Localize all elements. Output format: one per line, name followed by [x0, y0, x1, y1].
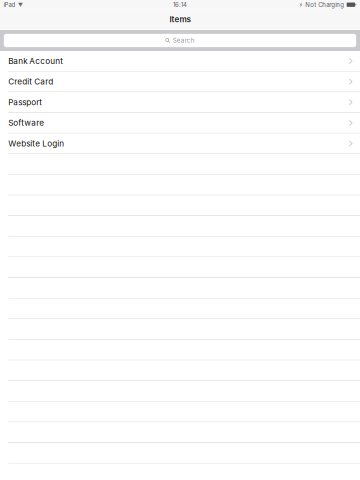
staticText: Software — [8, 118, 44, 128]
button[interactable]: Passport — [0, 92, 360, 113]
staticText: iPad — [4, 1, 16, 8]
staticText: Search — [173, 37, 195, 44]
button[interactable]: Software — [0, 113, 360, 133]
staticText: Not Charging — [305, 1, 344, 8]
staticText: 16:14 — [173, 1, 187, 8]
button[interactable]: Website Login — [0, 133, 360, 154]
staticText: Website Login — [8, 139, 64, 148]
staticText: Bank Account — [8, 56, 63, 66]
staticText: Credit Card — [8, 77, 53, 86]
staticText: Items — [169, 14, 190, 24]
button[interactable]: Bank Account — [0, 51, 360, 72]
staticText: Passport — [8, 97, 42, 107]
button[interactable]: Credit Card — [0, 72, 360, 92]
